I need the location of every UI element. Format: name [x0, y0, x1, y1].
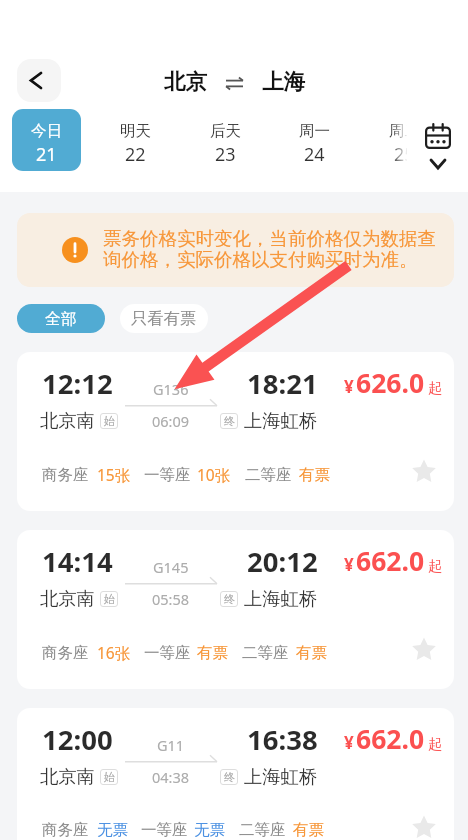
staticText: 北京南	[40, 587, 95, 610]
staticText: 北京	[164, 68, 207, 95]
staticText: 北京南	[40, 765, 95, 788]
staticText: 一等座	[141, 820, 188, 840]
staticText: 04:38	[152, 767, 190, 787]
staticText: 23	[215, 142, 236, 167]
staticText: 16张	[97, 642, 131, 663]
staticText: 周二	[389, 121, 420, 141]
staticText: 全部	[45, 309, 77, 329]
button[interactable]: 周一	[280, 109, 348, 171]
staticText: G136	[153, 379, 189, 399]
button[interactable]: 后天	[191, 109, 259, 171]
staticText: 16:38	[247, 721, 318, 758]
button[interactable]: 周二	[370, 109, 438, 171]
staticText: 21	[36, 142, 57, 167]
staticText: 终	[224, 770, 235, 784]
button[interactable]: Favorite	[402, 449, 446, 493]
staticText: 始	[104, 414, 115, 428]
button[interactable]: Favorite	[402, 627, 446, 671]
staticText: ¥	[344, 375, 354, 398]
staticText: 有票	[296, 643, 327, 663]
staticText: 明天	[120, 121, 151, 141]
staticText: 周一	[299, 121, 330, 141]
staticText: 起	[428, 557, 443, 575]
button[interactable]: 今日	[12, 109, 81, 171]
staticText: 一等座	[144, 465, 191, 485]
staticText: 二等座	[239, 820, 286, 840]
staticText: ¥	[344, 553, 354, 576]
staticText: 二等座	[245, 465, 292, 485]
staticText: 22	[125, 142, 146, 167]
staticText: 商务座	[42, 643, 89, 663]
staticText: G145	[153, 557, 189, 577]
staticText: 票务价格实时变化，当前价格仅为数据查询价格，实际价格以支付购买时为准。	[103, 227, 443, 271]
button[interactable]: 12:12	[17, 352, 454, 511]
button[interactable]: 全部	[17, 304, 105, 333]
staticText: 05:58	[152, 589, 190, 609]
staticText: 商务座	[42, 465, 89, 485]
staticText: 始	[104, 592, 115, 606]
staticText: 15张	[97, 464, 131, 485]
staticText: 25	[394, 142, 415, 167]
staticText: 起	[428, 379, 443, 397]
staticText: G11	[157, 735, 185, 755]
staticText: 一等座	[144, 643, 191, 663]
staticText: 626.0	[356, 365, 425, 401]
staticText: 上海虹桥	[244, 765, 318, 788]
staticText: 上海虹桥	[244, 587, 318, 610]
button[interactable]: Calendar	[411, 109, 465, 171]
staticText: 终	[224, 592, 235, 606]
staticText: 12:12	[42, 365, 113, 402]
button[interactable]: Back	[17, 59, 61, 102]
staticText: 10张	[197, 464, 231, 485]
staticText: 无票	[194, 820, 225, 840]
staticText: 有票	[299, 465, 330, 485]
staticText: 今日	[31, 121, 62, 141]
button[interactable]: Favorite	[402, 805, 446, 840]
staticText: 终	[224, 414, 235, 428]
staticText: 有票	[197, 643, 228, 663]
staticText: ¥	[344, 731, 354, 754]
staticText: 北京南	[40, 409, 95, 432]
staticText: 上海	[262, 68, 305, 95]
staticText: 14:14	[42, 543, 113, 580]
staticText: 上海虹桥	[244, 409, 318, 432]
staticText: 06:09	[152, 411, 190, 431]
staticText: 662.0	[356, 543, 425, 579]
button[interactable]: 明天	[101, 109, 169, 171]
staticText: 后天	[210, 121, 241, 141]
staticText: 662.0	[356, 721, 425, 757]
button[interactable]: 14:14	[17, 530, 454, 689]
staticText: 二等座	[242, 643, 289, 663]
staticText: 12:00	[42, 721, 113, 758]
staticText: 18:21	[247, 365, 318, 402]
staticText: 起	[428, 735, 443, 753]
staticText: 始	[104, 770, 115, 784]
staticText: 无票	[97, 820, 128, 840]
staticText: 只看有票	[131, 308, 197, 329]
button[interactable]: 12:00	[17, 708, 454, 840]
staticText: 商务座	[42, 820, 89, 840]
staticText: 24	[304, 142, 325, 167]
button[interactable]: 只看有票	[120, 304, 208, 333]
staticText: 有票	[293, 820, 324, 840]
staticText: 20:12	[247, 543, 318, 580]
